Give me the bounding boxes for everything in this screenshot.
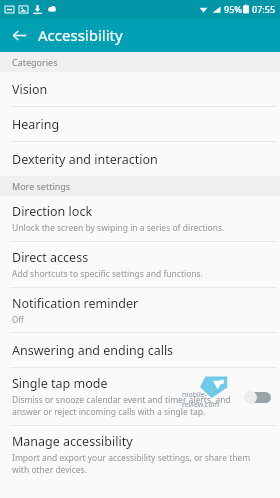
staticText: 07:55 — [252, 3, 276, 15]
staticText: Dexterity and interaction — [12, 151, 158, 168]
staticText: Answering and ending calls — [12, 342, 174, 359]
button[interactable]: Direction lock — [0, 196, 280, 241]
staticText: Off — [12, 314, 24, 325]
staticText: Notification reminder — [12, 295, 139, 312]
button[interactable]: Direct access — [0, 242, 280, 287]
staticText: Hearing — [12, 116, 60, 133]
staticText: Direction lock — [12, 203, 93, 220]
staticText: Import and export your accessibility set… — [12, 452, 251, 464]
button[interactable]: Vision — [0, 72, 280, 106]
button[interactable]: Single tap mode toggle — [244, 390, 272, 404]
staticText: Direct access — [12, 249, 89, 266]
button[interactable]: Notification reminder — [0, 288, 280, 332]
button[interactable]: Dexterity and interaction — [0, 142, 280, 176]
button[interactable]: Back — [6, 22, 32, 48]
staticText: 95% — [224, 3, 242, 15]
staticText: Categories — [12, 56, 58, 68]
staticText: More settings — [12, 180, 71, 192]
button[interactable]: Hearing — [0, 107, 280, 141]
staticText: Single tap mode — [12, 375, 108, 392]
staticText: Accessibility — [38, 25, 123, 45]
staticText: Vision — [12, 81, 48, 98]
button[interactable]: Single tap mode — [0, 368, 280, 425]
staticText: Manage accessibility — [12, 433, 133, 450]
button[interactable]: Answering and ending calls — [0, 333, 280, 367]
staticText: Unlock the screen by swiping in a series… — [12, 222, 225, 234]
staticText: answer or reject incoming calls with a s… — [12, 406, 206, 418]
button[interactable]: Manage accessibility — [0, 426, 280, 483]
staticText: Dismiss or snooze calendar event and tim… — [12, 394, 231, 406]
staticText: mobile-review.com — [182, 390, 230, 410]
staticText: Add shortcuts to specific settings and f… — [12, 268, 203, 280]
staticText: with other devices. — [12, 464, 87, 476]
